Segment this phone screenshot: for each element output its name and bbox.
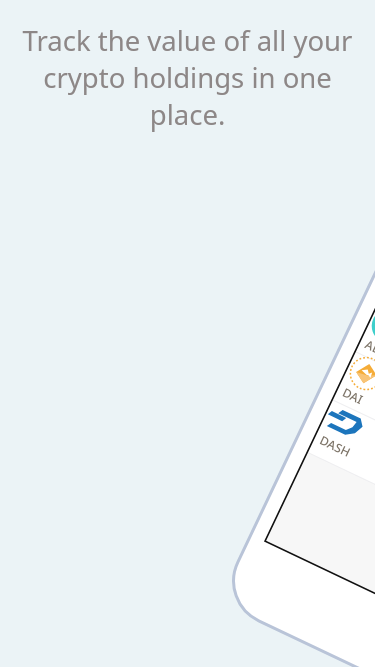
staticText: ALGO	[363, 336, 375, 364]
staticText: Track the value of all your crypto holdi…	[12, 22, 363, 133]
staticText: DASH	[317, 432, 353, 460]
staticText: DAI	[340, 384, 366, 407]
